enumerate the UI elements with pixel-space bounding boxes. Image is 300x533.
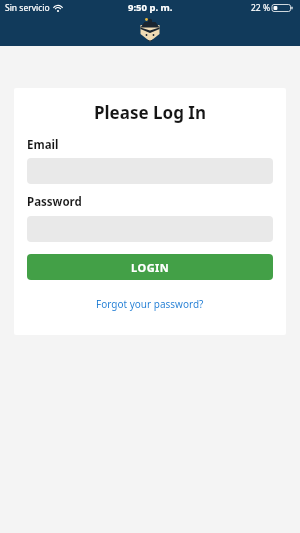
button[interactable]: LOGIN [27, 254, 273, 280]
staticText: Password [27, 194, 82, 210]
staticText: 9:50 p. m. [128, 1, 173, 14]
staticText: 22 % [251, 2, 270, 14]
staticText: Forgot your password? [96, 297, 204, 311]
staticText: Sin servicio [5, 2, 50, 14]
staticText: LOGIN [131, 260, 170, 275]
staticText: Please Log In [94, 101, 207, 124]
staticText: Email [27, 137, 59, 153]
button[interactable]: Forgot your password? [27, 297, 273, 311]
